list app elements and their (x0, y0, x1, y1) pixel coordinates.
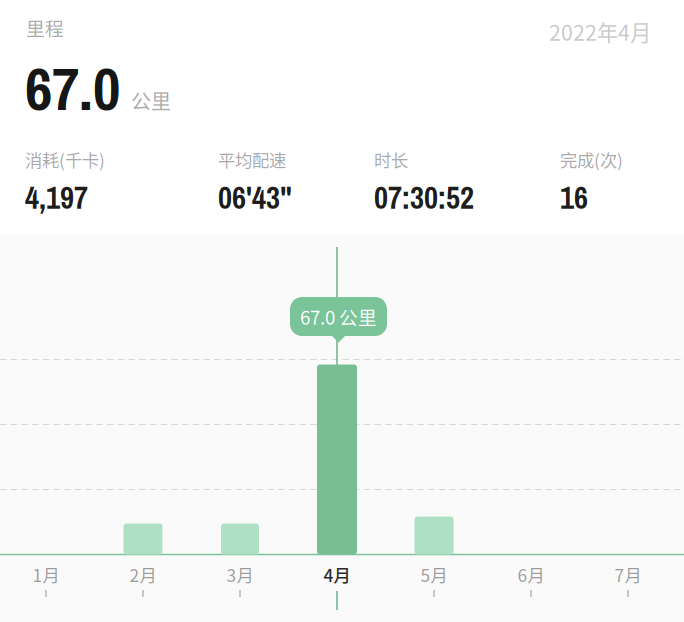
button[interactable]: 5月 里程 (414, 516, 453, 554)
staticText: 里程 (26, 14, 64, 41)
staticText: 公里 (131, 86, 171, 115)
button[interactable]: 4月 (288, 560, 385, 618)
button[interactable]: 消耗(千卡) (25, 147, 105, 218)
staticText: 4月 (323, 562, 350, 587)
staticText: 2月 (129, 562, 156, 587)
button[interactable]: 2月 (94, 560, 191, 618)
staticText: 4,197 (25, 177, 88, 218)
staticText: 06'43" (218, 177, 292, 218)
staticText: 16 (560, 177, 588, 218)
button[interactable]: 6月 (482, 560, 579, 618)
staticText: 07:30:52 (374, 177, 474, 218)
staticText: 5月 (420, 562, 447, 587)
button[interactable]: 2022年4月 (24, 16, 651, 47)
staticText: 时长 (374, 147, 408, 172)
button[interactable]: 平均配速 (218, 147, 292, 218)
staticText: 67.0 (25, 48, 120, 129)
staticText: 3月 (226, 562, 253, 587)
button[interactable]: 完成(次) (560, 147, 623, 218)
staticText: 消耗(千卡) (25, 147, 105, 172)
staticText: 1月 (32, 562, 59, 587)
staticText: 7月 (614, 562, 641, 587)
button[interactable]: 7月 (579, 560, 676, 618)
staticText: 2022年4月 (549, 16, 651, 47)
staticText: 平均配速 (218, 147, 286, 172)
button[interactable]: 3月 (191, 560, 288, 618)
staticText: 67.0 公里 (300, 303, 377, 330)
button[interactable]: 4月 里程 67.0 公里 (317, 364, 357, 554)
button[interactable]: 时长 (374, 147, 474, 218)
staticText: 完成(次) (560, 147, 623, 172)
button[interactable]: 5月 (385, 560, 482, 618)
button[interactable]: 3月 里程 (221, 523, 259, 554)
button[interactable]: 67.0 公里 (290, 297, 387, 342)
staticText: 6月 (517, 562, 544, 587)
button[interactable]: 1月 (0, 560, 94, 618)
